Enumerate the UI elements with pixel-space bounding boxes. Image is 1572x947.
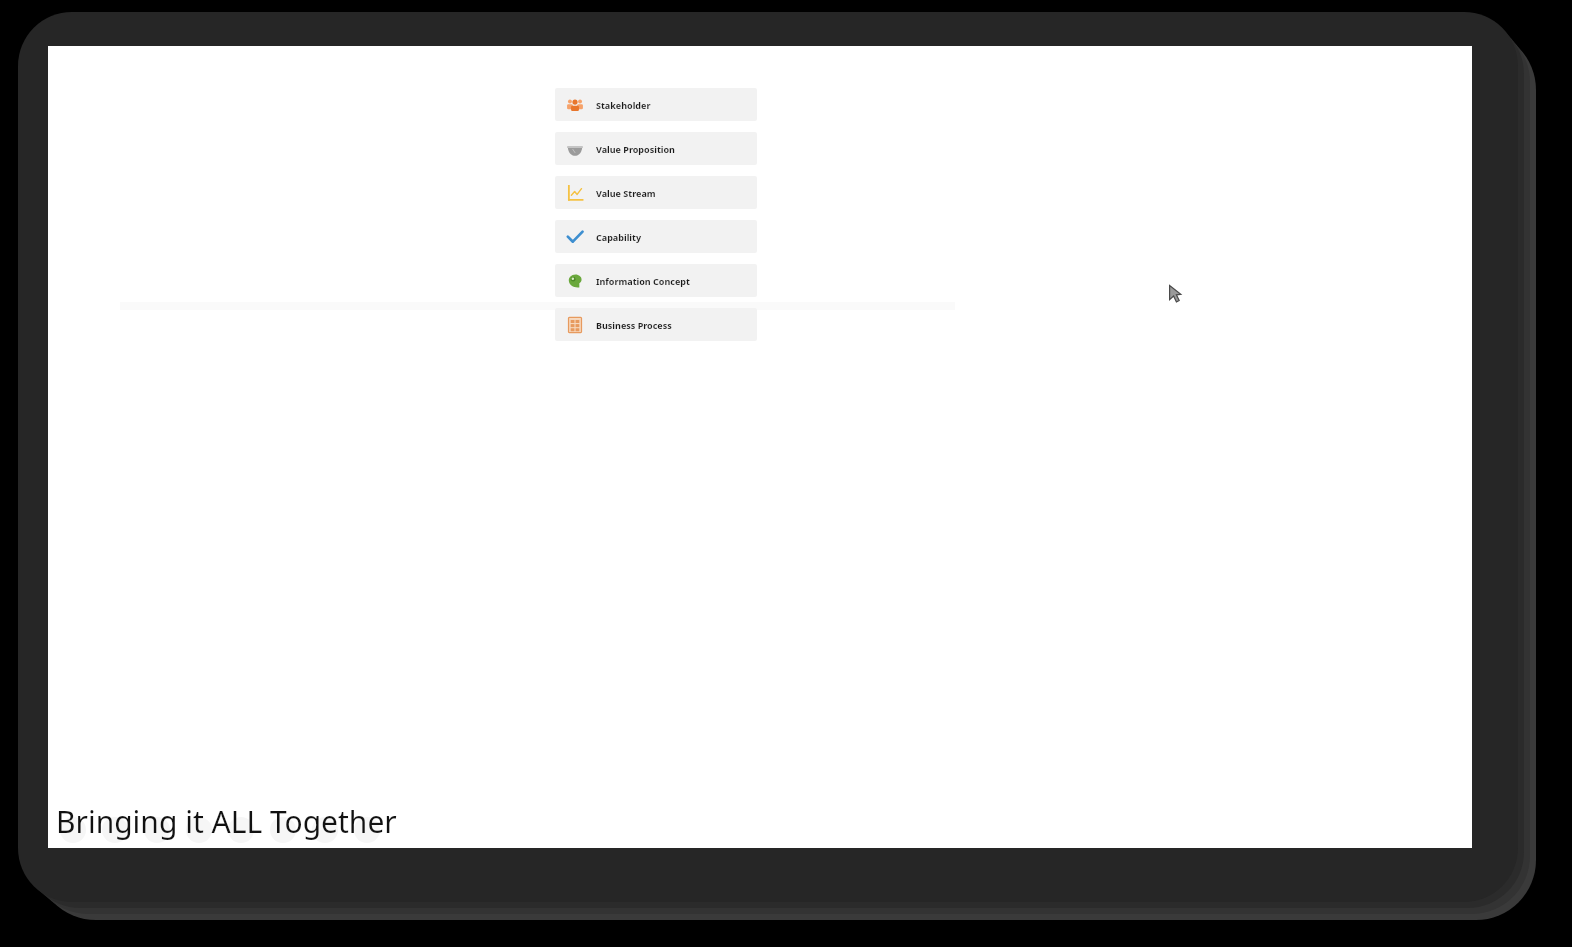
staticText: Information Concept: [596, 275, 690, 287]
staticText: Capability: [596, 231, 642, 243]
button[interactable]: Capability: [555, 220, 757, 253]
staticText: Value Stream: [596, 187, 656, 199]
button[interactable]: Value Stream: [555, 176, 757, 209]
button[interactable]: Stakeholder: [555, 88, 757, 121]
staticText: Business Process: [596, 319, 672, 331]
button[interactable]: Information Concept: [555, 264, 757, 297]
button[interactable]: Business Process: [555, 308, 757, 341]
staticText: Bringing it ALL Together: [56, 801, 397, 842]
staticText: Stakeholder: [596, 99, 651, 111]
button[interactable]: Value Proposition: [555, 132, 757, 165]
staticText: Value Proposition: [596, 143, 675, 155]
